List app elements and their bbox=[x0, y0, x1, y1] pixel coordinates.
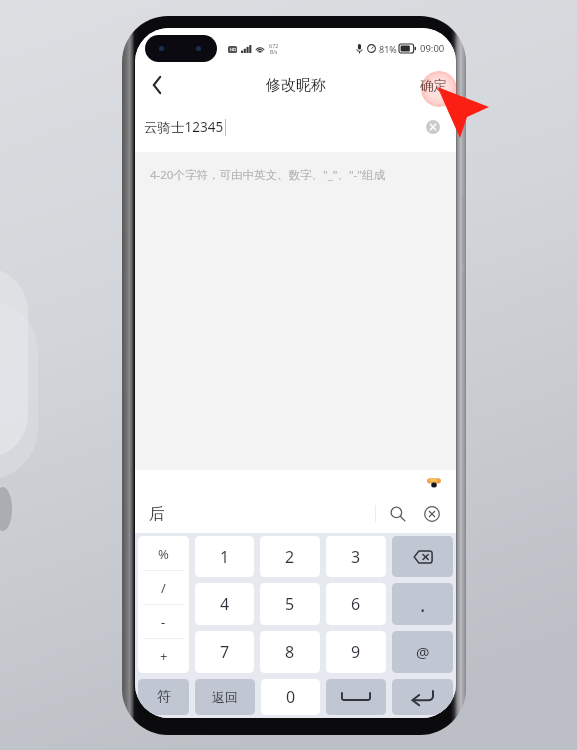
staticText: + bbox=[160, 647, 168, 665]
button[interactable]: Space bbox=[326, 679, 386, 715]
button[interactable]: 9 bbox=[326, 631, 386, 673]
button[interactable]: 4 bbox=[195, 583, 254, 625]
staticText: @ bbox=[416, 642, 430, 662]
button[interactable]: % bbox=[138, 536, 189, 571]
button[interactable]: Back bbox=[140, 68, 174, 102]
staticText: % bbox=[158, 545, 169, 563]
staticText: 6 bbox=[351, 593, 361, 615]
staticText: 1 bbox=[220, 546, 230, 568]
staticText: 09:00 bbox=[420, 42, 445, 55]
staticText: 修改昵称 bbox=[266, 76, 326, 95]
button[interactable]: Enter bbox=[392, 679, 453, 715]
button[interactable]: 5 bbox=[260, 583, 320, 625]
button[interactable]: / bbox=[138, 571, 189, 605]
button[interactable]: 确定 bbox=[416, 71, 451, 100]
button[interactable]: 1 bbox=[195, 536, 254, 577]
staticText: 云骑士12345 bbox=[144, 118, 224, 136]
staticText: 4-20个字符，可由中英文、数字、"_"、"-"组成 bbox=[150, 167, 386, 183]
button[interactable]: Search bbox=[386, 502, 410, 526]
staticText: 8 bbox=[285, 641, 295, 663]
button[interactable]: 返回 bbox=[195, 679, 255, 715]
staticText: 672 bbox=[269, 42, 279, 49]
staticText: 5 bbox=[285, 593, 295, 615]
button[interactable]: . bbox=[392, 583, 453, 625]
button[interactable]: 6 bbox=[326, 583, 386, 625]
button[interactable]: + bbox=[138, 639, 189, 673]
button[interactable]: 8 bbox=[260, 631, 320, 673]
button[interactable]: 0 bbox=[261, 679, 320, 715]
staticText: 9 bbox=[351, 641, 361, 663]
staticText: 81% bbox=[379, 43, 397, 55]
staticText: 4 bbox=[220, 593, 230, 615]
staticText: 返回 bbox=[212, 689, 238, 705]
button[interactable]: 符 bbox=[138, 679, 189, 715]
staticText: 3 bbox=[351, 546, 361, 568]
staticText: 2 bbox=[285, 546, 295, 568]
staticText: / bbox=[161, 579, 166, 597]
staticText: 确定 bbox=[420, 77, 447, 94]
staticText: 0 bbox=[286, 686, 296, 708]
staticText: HD bbox=[230, 47, 236, 52]
button[interactable]: 3 bbox=[326, 536, 386, 577]
button[interactable]: Input method logo bbox=[427, 475, 441, 489]
button[interactable]: Close keyboard bbox=[420, 502, 444, 526]
staticText: 7 bbox=[220, 641, 230, 663]
staticText: B/s bbox=[270, 49, 278, 56]
button[interactable]: 7 bbox=[195, 631, 254, 673]
button[interactable]: Backspace bbox=[392, 536, 453, 577]
button[interactable]: - bbox=[138, 605, 189, 639]
staticText: - bbox=[161, 613, 166, 631]
staticText: 后 bbox=[149, 504, 165, 524]
button[interactable]: 2 bbox=[260, 536, 320, 577]
staticText: . bbox=[420, 591, 426, 618]
button[interactable]: @ bbox=[392, 631, 453, 673]
button[interactable]: Clear text bbox=[422, 116, 444, 138]
staticText: 符 bbox=[157, 688, 171, 706]
